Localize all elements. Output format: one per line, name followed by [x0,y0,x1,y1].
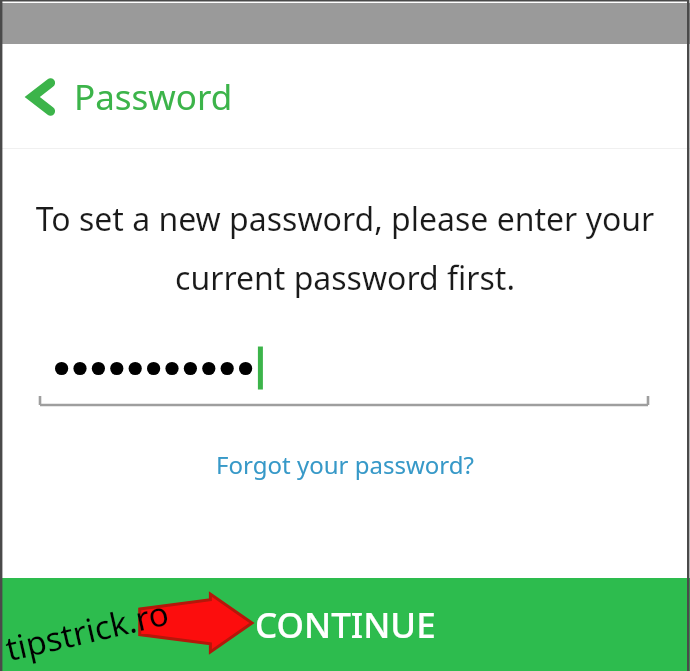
staticText: tipstrick.ro [1,590,173,671]
button[interactable]: CONTINUE [0,578,690,671]
staticText: To set a new password, please enter your… [30,197,660,300]
staticText: Password [74,73,233,121]
button[interactable] [0,340,690,402]
staticText: CONTINUE [255,601,436,649]
button[interactable]: Back [22,67,241,127]
button[interactable]: Forgot your password? [0,444,690,485]
staticText: Forgot your password? [216,448,474,481]
